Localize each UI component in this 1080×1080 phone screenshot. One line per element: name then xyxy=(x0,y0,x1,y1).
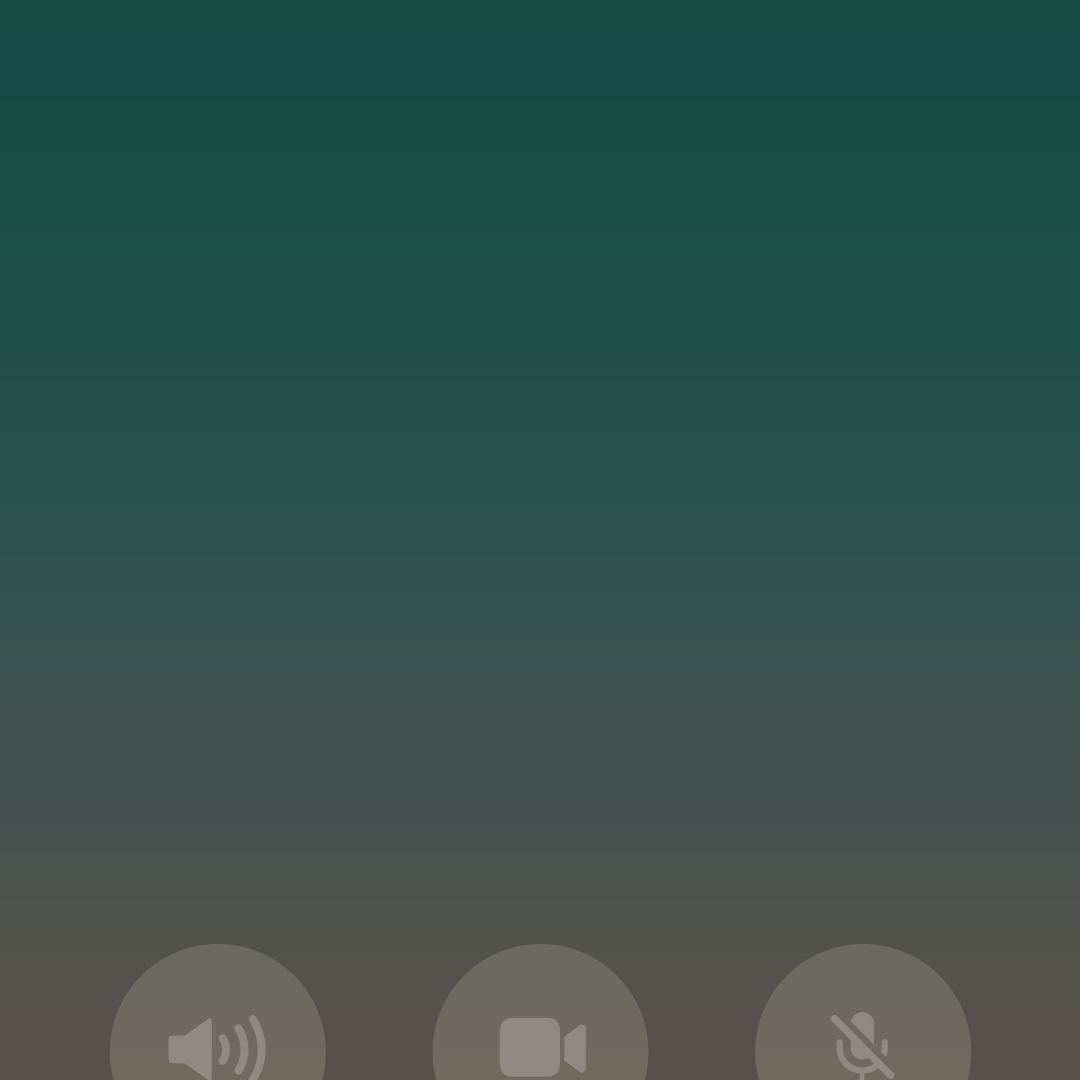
button[interactable]: Turn Camera Off xyxy=(432,944,648,1080)
button[interactable]: Speaker xyxy=(110,944,326,1080)
button[interactable]: Unmute xyxy=(755,944,971,1080)
